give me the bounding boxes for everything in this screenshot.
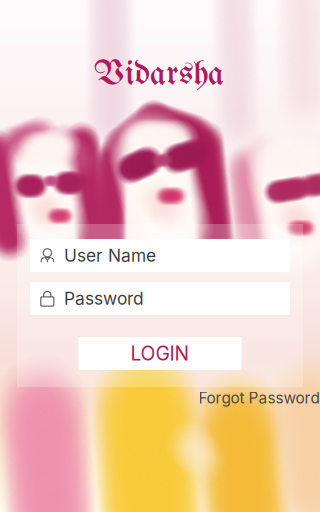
button[interactable]: Forgot Password? xyxy=(198,389,320,407)
button[interactable]: Password xyxy=(30,282,290,315)
staticText: Forgot Password? xyxy=(198,389,320,407)
staticText: User Name xyxy=(64,245,156,266)
staticText: Vidarsha xyxy=(94,57,224,93)
staticText: LOGIN xyxy=(130,342,189,365)
staticText: Password xyxy=(64,288,144,309)
button[interactable]: User Name xyxy=(30,239,290,272)
button[interactable]: LOGIN xyxy=(78,337,241,370)
